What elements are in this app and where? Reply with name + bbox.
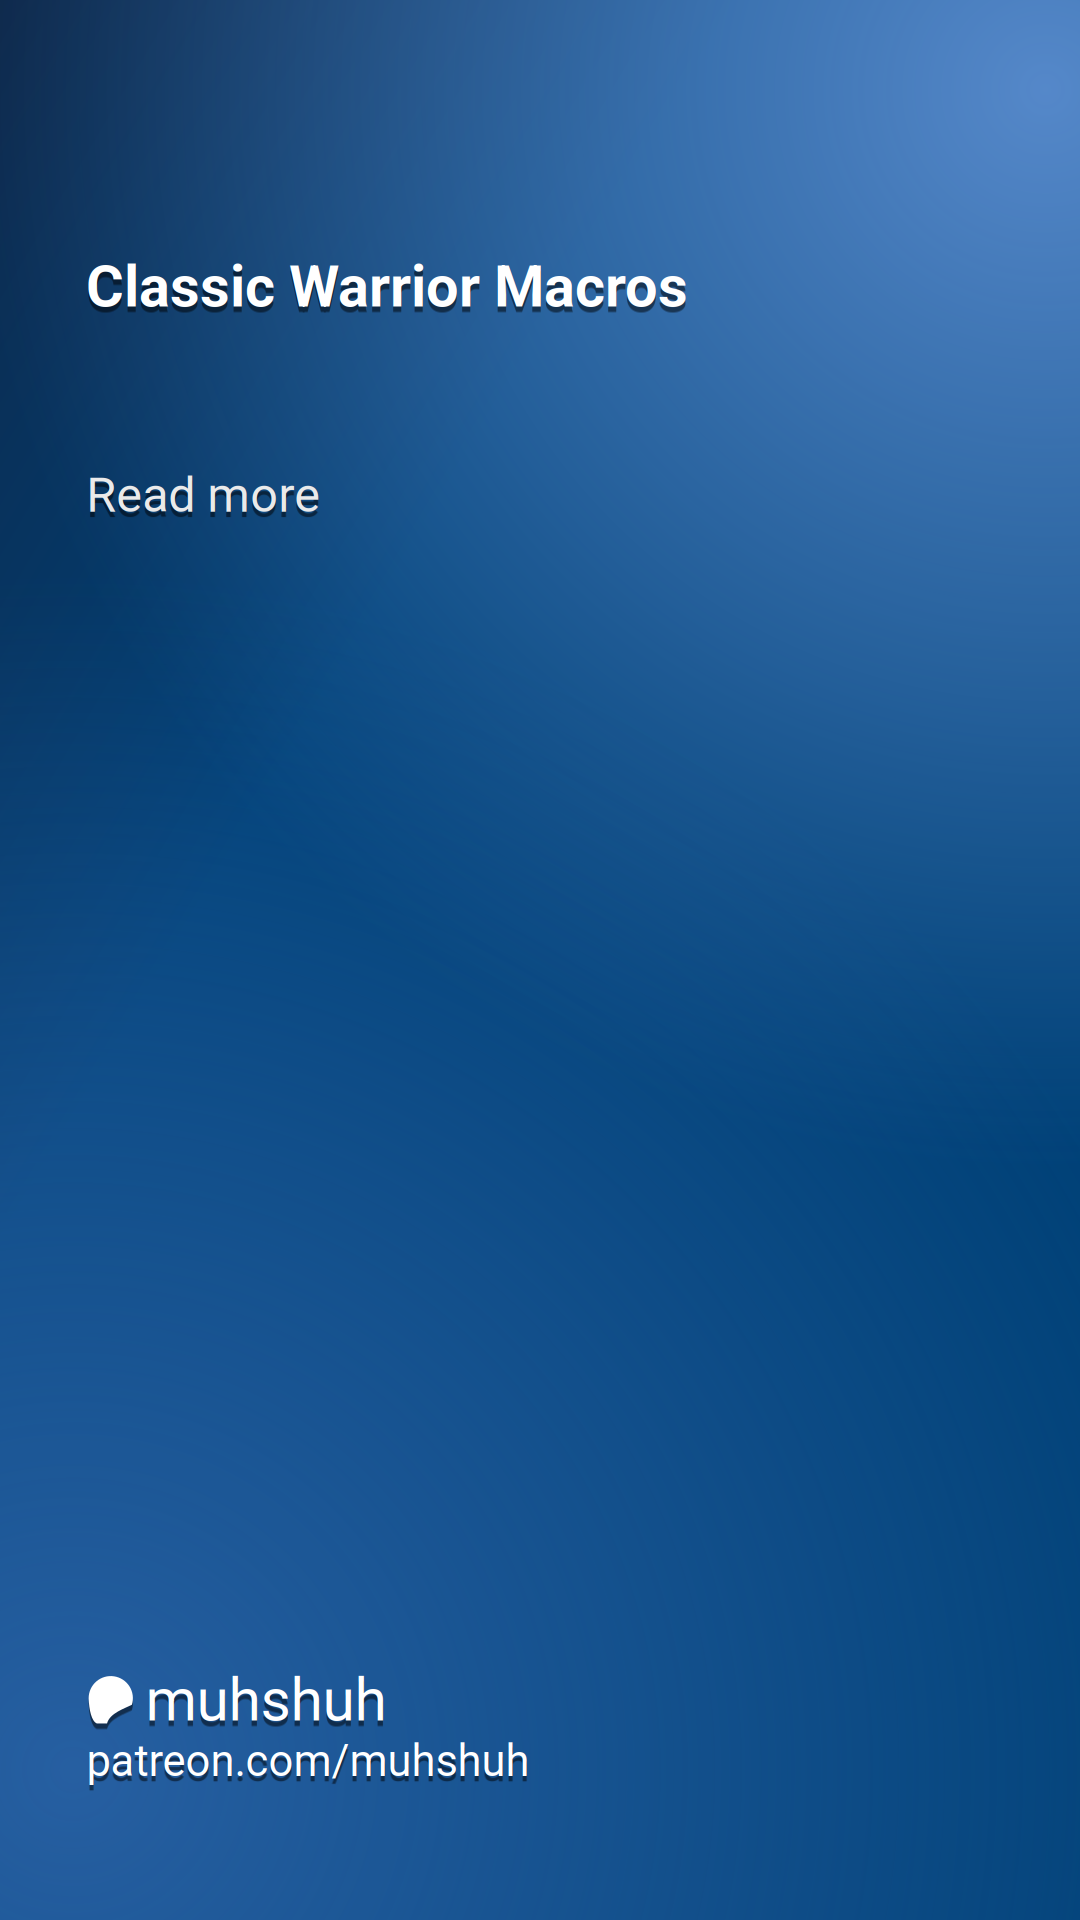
staticText: patreon.com/muhshuh xyxy=(87,1736,530,1786)
staticText: Read more xyxy=(86,467,320,523)
staticText: muhshuh xyxy=(146,1666,387,1735)
button[interactable]: patreon.com/muhshuh xyxy=(87,1736,530,1786)
button[interactable]: muhshuh xyxy=(88,1666,387,1735)
button[interactable]: Read more xyxy=(86,467,320,523)
staticText: Classic Warrior Macros xyxy=(86,253,688,320)
